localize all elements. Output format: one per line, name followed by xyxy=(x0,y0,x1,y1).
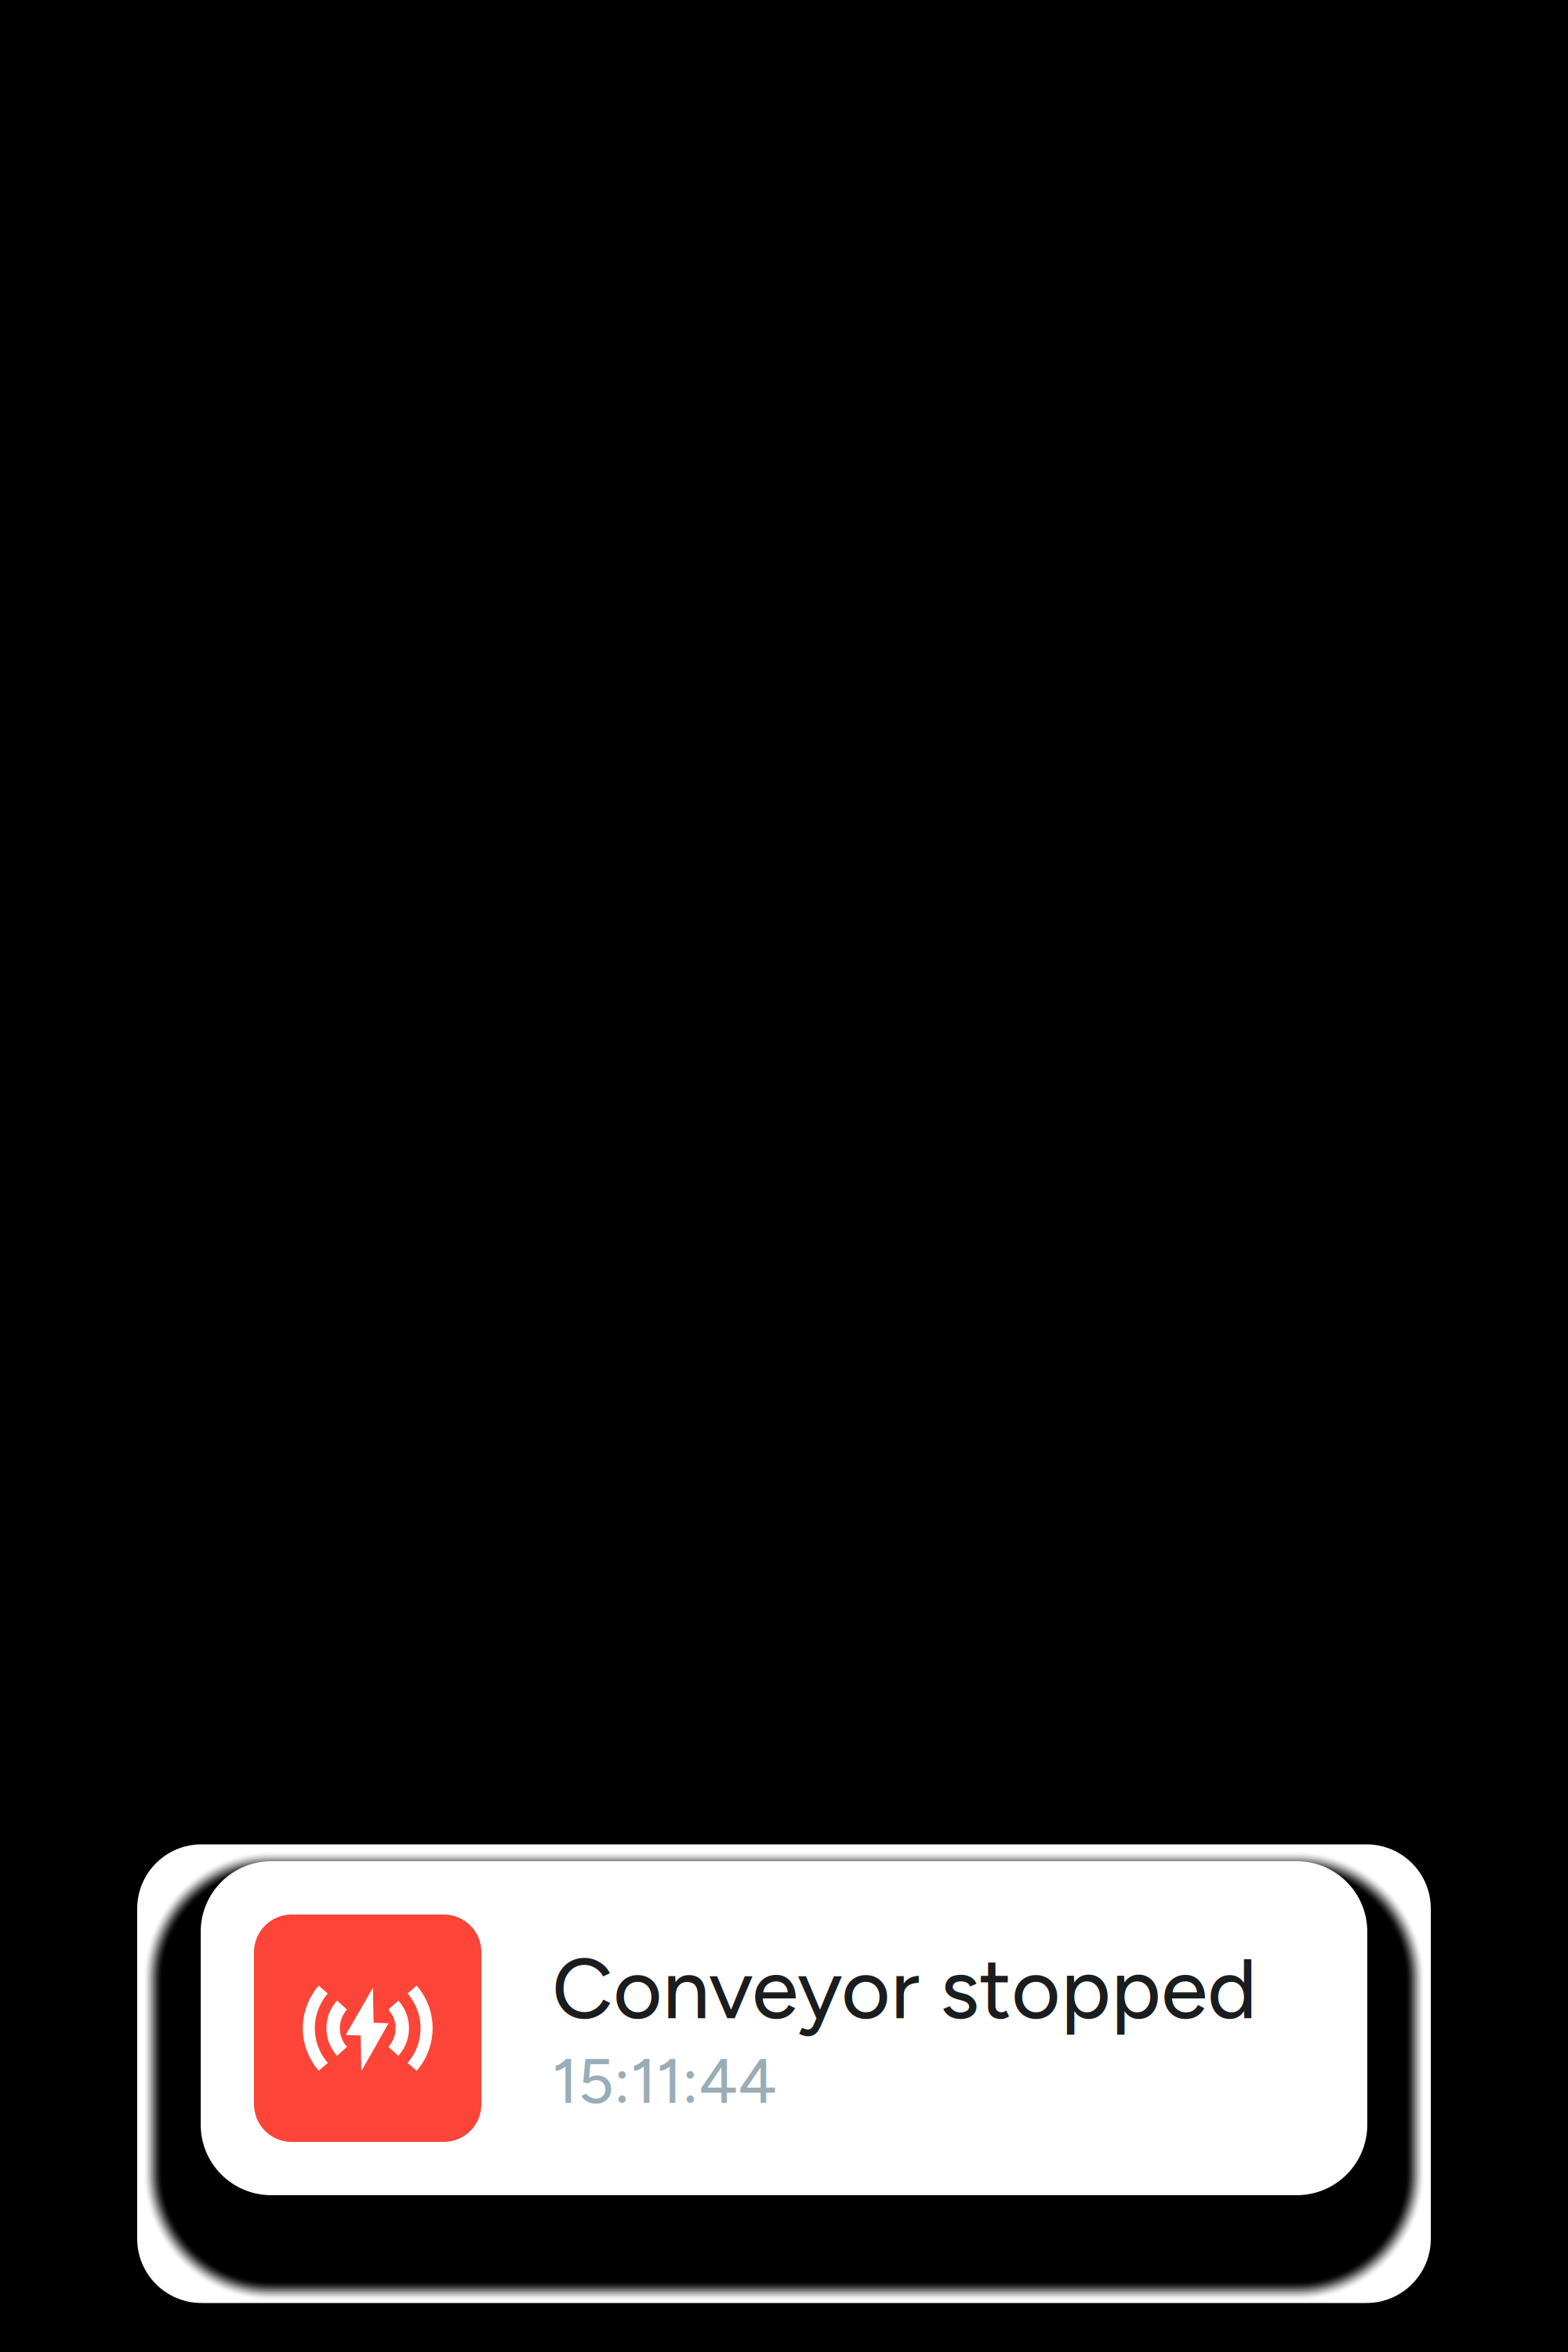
button[interactable]: Conveyor stopped xyxy=(201,1861,1367,2195)
staticText: 15:11:44 xyxy=(552,2043,777,2119)
staticText: Conveyor stopped xyxy=(552,1938,1257,2039)
